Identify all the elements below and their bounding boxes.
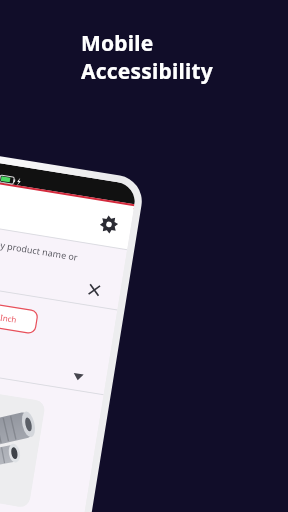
button[interactable]: Mobile Accessibility promo — [0, 0, 288, 512]
